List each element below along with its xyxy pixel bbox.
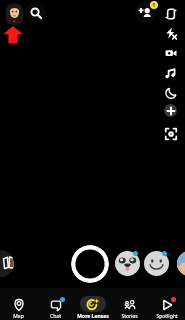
button[interactable]: Flash off [163,25,178,40]
staticText: Chat [50,313,61,320]
button[interactable]: Night mode [163,85,178,100]
button[interactable]: Map [0,298,37,320]
staticText: Spotlight [156,313,178,320]
button[interactable]: Memories [0,250,14,277]
button[interactable]: Add friends [135,2,156,23]
button[interactable]: Music [163,65,178,80]
button[interactable]: Stories [111,298,148,320]
button[interactable]: Capture [71,245,109,283]
button[interactable]: Lens [144,251,169,276]
button[interactable]: Flip camera [163,6,178,21]
button[interactable]: Chat [37,298,74,320]
button[interactable]: Search [25,2,46,23]
button[interactable]: Spotlight [148,298,185,320]
button[interactable]: Scan [163,126,178,141]
button[interactable]: Video [163,45,178,60]
button[interactable]: Lens [115,251,140,276]
staticText: Map [13,313,24,320]
staticText: More Lenses [77,313,109,320]
button[interactable]: More tools [164,104,177,117]
button[interactable]: Lens [177,251,185,276]
button[interactable]: Profile [3,2,26,25]
staticText: 1 [152,1,156,9]
button[interactable]: More Lenses [74,296,111,320]
staticText: Stories [121,313,138,320]
